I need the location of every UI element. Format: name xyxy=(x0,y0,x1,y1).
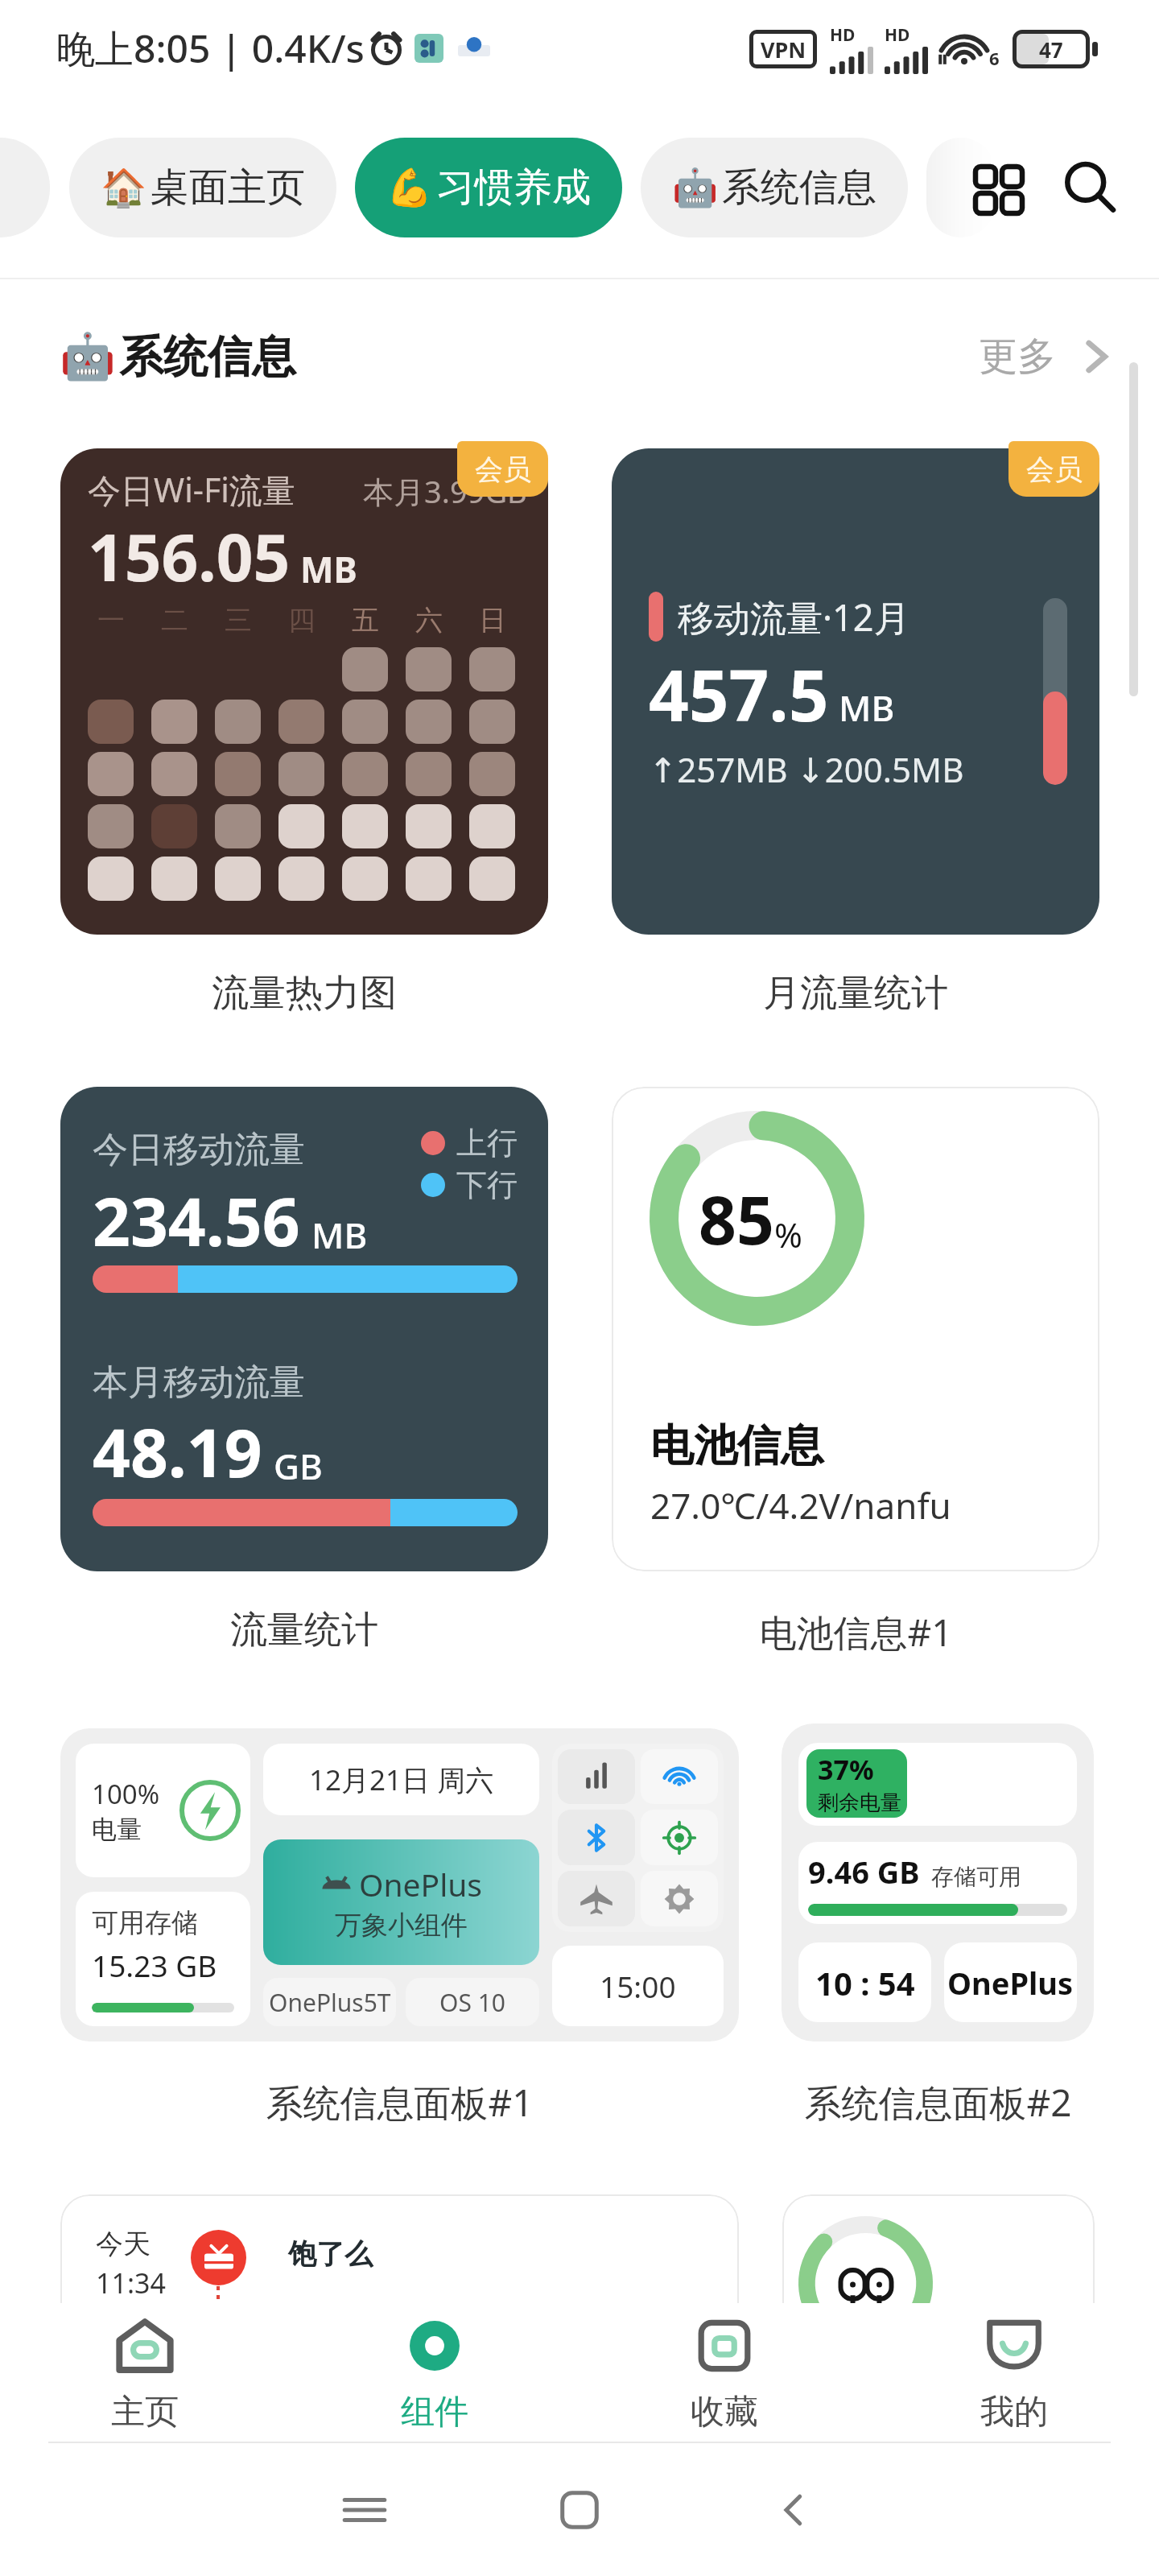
staticText: 剩余电量 xyxy=(818,1790,901,1816)
staticText: MB xyxy=(300,545,357,593)
staticText: 156.05 xyxy=(88,512,291,600)
staticText: 可用存储 xyxy=(92,1906,198,1940)
staticText: 457.5 xyxy=(649,646,829,741)
staticText: 收藏 xyxy=(691,2391,758,2434)
staticText: 系统信息 xyxy=(119,329,296,385)
staticText: 六 xyxy=(415,603,443,638)
staticText: 会员 xyxy=(1026,452,1083,487)
button[interactable]: 🏠 xyxy=(69,138,336,237)
staticText: 15:00 xyxy=(600,1966,676,2006)
staticText: 四 xyxy=(288,603,316,638)
staticText: MB xyxy=(311,1211,368,1259)
staticText: 12月21日 周六 xyxy=(309,1761,494,1799)
button[interactable]: 💪 xyxy=(355,138,622,237)
staticText: 🤖 xyxy=(60,330,116,383)
staticText: GB xyxy=(274,1442,323,1490)
button[interactable]: 收藏 xyxy=(579,2303,869,2442)
staticText: 组件 xyxy=(401,2391,468,2434)
staticText: MB xyxy=(839,683,895,732)
staticText: HD xyxy=(885,23,910,47)
button[interactable]: 主页 xyxy=(0,2303,290,2442)
staticText: 本月3.99GB xyxy=(363,470,527,512)
staticText: OnePlus xyxy=(359,1863,482,1905)
staticText: 桌面主页 xyxy=(151,163,305,212)
staticText: 47 xyxy=(1039,35,1063,64)
staticText: 上行 xyxy=(456,1124,518,1162)
staticText: 流量热力图 xyxy=(212,970,397,1017)
staticText: 三 xyxy=(225,603,252,638)
staticText: VPN xyxy=(761,35,806,64)
staticText: % xyxy=(774,1212,802,1257)
staticText: OS 10 xyxy=(439,1986,506,2019)
staticText: 晚上8:05 | 0.4K/s xyxy=(56,22,365,75)
staticText: 存储可用 xyxy=(931,1863,1021,1891)
staticText: 电量 xyxy=(92,1814,142,1845)
staticText: 我的 xyxy=(980,2391,1048,2434)
staticText: 15.23 GB xyxy=(92,1945,217,1985)
staticText: 48.19 xyxy=(93,1406,262,1496)
staticText: 85 xyxy=(699,1174,774,1264)
staticText: 主页 xyxy=(111,2391,179,2434)
button[interactable]: 组件 xyxy=(290,2303,579,2442)
staticText: 一 xyxy=(97,603,125,638)
button[interactable]: toggle xyxy=(641,1749,718,1804)
staticText: 万象小组件 xyxy=(335,1909,468,1942)
staticText: 日 xyxy=(479,603,506,638)
staticText: 100% xyxy=(92,1776,160,1812)
staticText: 习惯养成 xyxy=(436,163,591,212)
staticText: 💪 xyxy=(386,166,433,209)
staticText: OnePlus5T xyxy=(269,1986,391,2019)
staticText: 电池信息#1 xyxy=(759,1607,953,1657)
staticText: 月流量统计 xyxy=(763,970,948,1017)
staticText: 今日Wi-Fi流量 xyxy=(88,467,295,512)
button[interactable]: Grid view xyxy=(956,147,1037,228)
button[interactable]: Recents xyxy=(257,2485,472,2535)
staticText: 234.56 xyxy=(93,1175,300,1265)
staticText: HD xyxy=(830,23,856,47)
button[interactable]: toggle xyxy=(641,1810,718,1865)
staticText: 移动流量·12月 xyxy=(678,592,910,642)
staticText: 系统信息面板#1 xyxy=(266,2077,534,2128)
button[interactable]: Home xyxy=(472,2487,687,2533)
button[interactable]: 🤖 xyxy=(641,138,908,237)
staticText: 37% xyxy=(818,1751,874,1788)
staticText: 🤖 xyxy=(672,166,719,209)
button[interactable]: Search xyxy=(1050,147,1130,228)
staticText: 五 xyxy=(352,603,379,638)
staticText: 下行 xyxy=(456,1166,518,1204)
staticText: 🏠 xyxy=(101,166,147,209)
button[interactable]: 我的 xyxy=(869,2303,1159,2442)
button[interactable]: toggle xyxy=(558,1810,635,1865)
staticText: OnePlus xyxy=(947,1962,1074,2004)
button[interactable]: toggle xyxy=(641,1871,718,1926)
button[interactable]: 更多 xyxy=(979,332,1119,381)
staticText: 二 xyxy=(161,603,188,638)
staticText: 系统信息 xyxy=(722,163,876,212)
staticText: 今日移动流量 xyxy=(93,1128,305,1172)
staticText: 饱了么 xyxy=(288,2236,373,2272)
staticText: 会员 xyxy=(475,452,531,487)
staticText: 10 : 54 xyxy=(815,1961,915,2004)
staticText: 更多 xyxy=(979,332,1056,381)
staticText: 流量统计 xyxy=(230,1607,378,1653)
button[interactable]: toggle xyxy=(558,1871,635,1926)
staticText: 本月移动流量 xyxy=(93,1360,305,1405)
staticText: 系统信息面板#2 xyxy=(804,2077,1072,2128)
staticText: 11:34 xyxy=(96,2264,166,2301)
staticText: 今天 xyxy=(96,2227,151,2261)
staticText: ↑257MB ↓200.5MB xyxy=(649,746,964,792)
staticText: 27.0℃/4.2V/nanfu xyxy=(650,1481,951,1529)
staticText: 9.46 GB xyxy=(808,1851,920,1893)
button[interactable]: Back xyxy=(687,2487,901,2533)
button[interactable]: toggle xyxy=(558,1749,635,1804)
staticText: 电池信息 xyxy=(650,1418,824,1473)
staticText: 6 xyxy=(989,46,1000,70)
